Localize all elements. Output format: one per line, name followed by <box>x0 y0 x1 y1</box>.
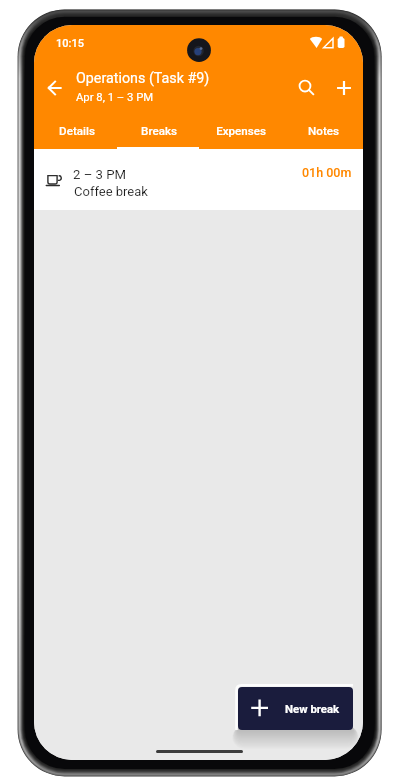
button[interactable]: 2 – 3 PM <box>34 149 363 210</box>
button[interactable]: Breaks <box>117 108 199 149</box>
staticText: Breaks <box>141 124 177 138</box>
staticText: Operations (Task #9) <box>76 70 210 87</box>
button[interactable]: Back <box>38 71 72 105</box>
button[interactable]: Add <box>327 71 361 105</box>
staticText: New break <box>285 702 340 715</box>
button[interactable]: Details <box>34 108 117 149</box>
staticText: 01h 00m <box>302 165 352 180</box>
button[interactable]: Notes <box>281 108 363 149</box>
staticText: Apr 8, 1 – 3 PM <box>76 91 154 104</box>
button[interactable]: New break <box>238 687 353 730</box>
button[interactable]: Expenses <box>199 108 281 149</box>
staticText: 2 – 3 PM <box>73 167 127 182</box>
staticText: Details <box>59 124 95 138</box>
staticText: Coffee break <box>74 184 148 199</box>
staticText: Expenses <box>216 124 266 138</box>
staticText: 10:15 <box>56 37 84 50</box>
button[interactable]: Search <box>288 69 322 103</box>
staticText: Notes <box>308 124 339 138</box>
